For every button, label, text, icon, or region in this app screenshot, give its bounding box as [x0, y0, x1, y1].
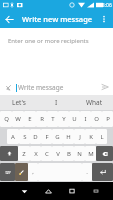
button[interactable]: L [96, 129, 107, 144]
staticText: I [55, 98, 58, 107]
staticText: !2? [5, 170, 11, 175]
button[interactable]: More options [95, 10, 113, 28]
staticText: Z [22, 150, 26, 158]
staticText: Let's [12, 98, 26, 107]
button[interactable]: What [75, 95, 113, 110]
staticText: A [11, 133, 15, 141]
button[interactable]: !2? [0, 163, 15, 181]
staticText: H [66, 133, 71, 141]
staticText: W [15, 115, 21, 123]
staticText: O [94, 115, 99, 123]
button[interactable]: B [63, 146, 74, 161]
button[interactable]: F [41, 129, 52, 144]
staticText: E [28, 115, 32, 123]
button[interactable]: Back [13, 182, 36, 200]
staticText: Write message [18, 83, 64, 92]
staticText: F [45, 133, 49, 141]
staticText: C [45, 150, 49, 158]
button[interactable]: I [37, 95, 75, 110]
staticText: X [34, 150, 38, 158]
button[interactable]: Shift [0, 146, 18, 161]
button[interactable]: Q [0, 111, 12, 127]
button[interactable]: Recent apps [60, 182, 84, 200]
staticText: D [33, 133, 38, 141]
staticText: K [89, 133, 93, 141]
staticText: P [106, 115, 110, 123]
button[interactable]: O [91, 111, 102, 127]
button[interactable]: G [52, 129, 63, 144]
button[interactable]: J [74, 129, 85, 144]
button[interactable]: Enter [92, 163, 113, 181]
staticText: R [40, 115, 44, 123]
button[interactable]: X [30, 146, 41, 161]
button[interactable]: I [80, 111, 91, 127]
button[interactable]: W [12, 111, 24, 127]
button[interactable]: Back [0, 10, 18, 28]
staticText: G [55, 133, 60, 141]
button[interactable]: D [30, 129, 41, 144]
button[interactable]: Z [18, 146, 30, 161]
button[interactable]: N [74, 146, 85, 161]
staticText: What [86, 98, 103, 107]
button[interactable]: H [63, 129, 74, 144]
button[interactable]: V [52, 146, 63, 161]
button[interactable]: K [85, 129, 96, 144]
staticText: , [32, 168, 34, 176]
staticText: Write new message [22, 14, 95, 24]
staticText: S [23, 133, 27, 141]
staticText: B [67, 150, 71, 158]
button[interactable]: , [28, 163, 38, 181]
staticText: Enter one or more recipients [8, 37, 89, 45]
staticText: N [77, 150, 82, 158]
button[interactable]: Emoji and handwriting [15, 163, 28, 181]
staticText: V [56, 150, 60, 158]
staticText: I [84, 115, 87, 123]
staticText: T [51, 115, 55, 123]
staticText: Q [4, 115, 9, 123]
button[interactable]: Send [97, 79, 113, 95]
staticText: M [88, 150, 94, 158]
staticText: L [100, 133, 104, 141]
button[interactable]: Switch keyboard [84, 182, 108, 200]
button[interactable]: Home [36, 182, 60, 200]
button[interactable]: T [47, 111, 58, 127]
button[interactable]: M [85, 146, 96, 161]
staticText: 18:06 [99, 2, 112, 9]
button[interactable]: C [41, 146, 52, 161]
button[interactable]: Attach [0, 79, 16, 95]
button[interactable]: Backspace [96, 146, 113, 161]
button[interactable]: . [82, 163, 92, 181]
staticText: U [72, 115, 77, 123]
button[interactable]: A [7, 129, 19, 144]
button[interactable]: Let's [0, 95, 37, 110]
staticText: Y [62, 115, 66, 123]
button[interactable]: P [102, 111, 113, 127]
button[interactable]: U [69, 111, 80, 127]
staticText: J [79, 133, 81, 141]
button[interactable]: R [36, 111, 47, 127]
button[interactable]: E [24, 111, 36, 127]
staticText: . [86, 168, 88, 176]
button[interactable]: S [19, 129, 30, 144]
button[interactable]: Y [58, 111, 69, 127]
